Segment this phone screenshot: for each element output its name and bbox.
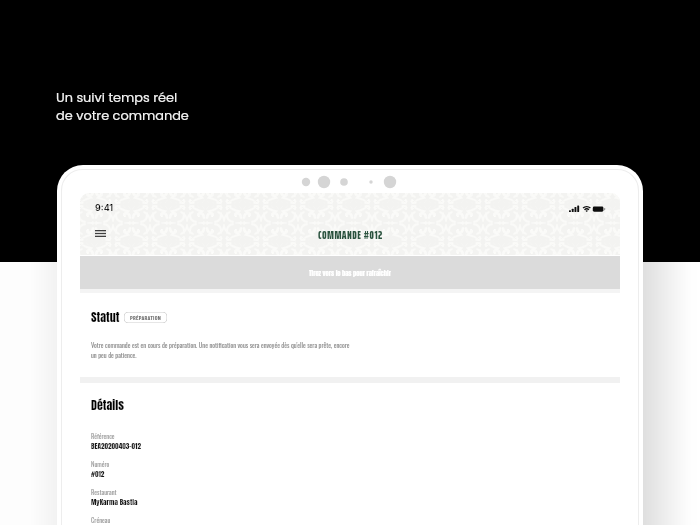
staticText: Statut bbox=[91, 308, 120, 326]
staticText: MyKarma Bastia bbox=[91, 497, 138, 508]
staticText: Restaurant bbox=[91, 487, 117, 497]
staticText: Numéro bbox=[91, 459, 110, 469]
staticText: Créneau bbox=[91, 515, 111, 525]
staticText: de votre commande bbox=[56, 106, 189, 124]
staticText: 9:41 bbox=[95, 202, 114, 213]
staticText: PRÉPARATION bbox=[130, 314, 161, 321]
button[interactable]: Menu bbox=[88, 221, 112, 245]
staticText: Référence bbox=[91, 431, 115, 441]
button[interactable]: COMMANDE #012 bbox=[318, 227, 383, 244]
staticText: #012 bbox=[91, 469, 105, 480]
staticText: BEA20200403-012 bbox=[91, 441, 142, 452]
staticText: Détails bbox=[91, 396, 124, 414]
staticText: Un suivi temps réel bbox=[56, 88, 178, 106]
staticText: Votre commande est en cours de préparati… bbox=[91, 340, 353, 360]
button[interactable]: PRÉPARATION bbox=[124, 312, 167, 323]
staticText: Tirez vers le bas pour rafraîchir bbox=[309, 268, 391, 278]
